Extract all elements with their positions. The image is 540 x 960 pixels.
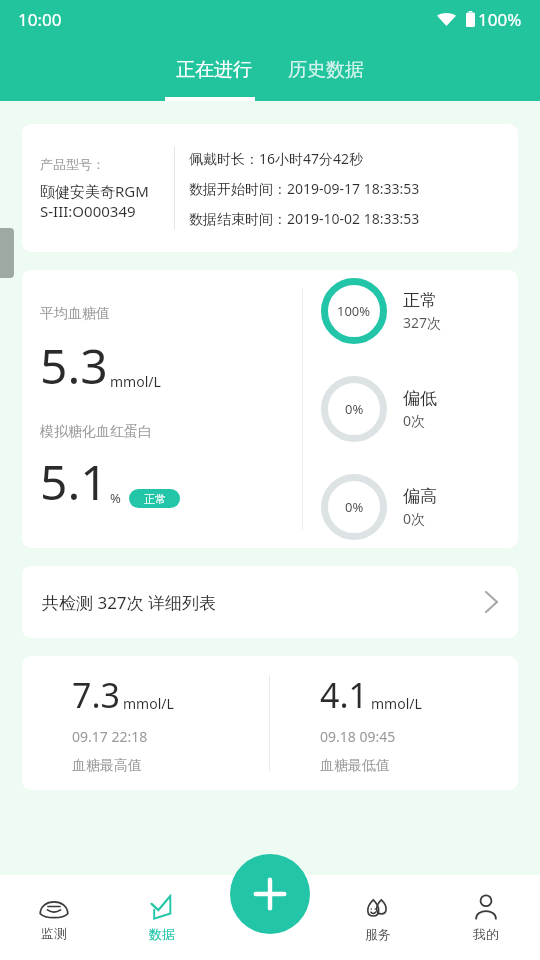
- button[interactable]: 正在进行: [166, 50, 262, 90]
- staticText: 产品型号：: [40, 156, 105, 172]
- staticText: 共检测 327次 详细列表: [42, 591, 217, 614]
- staticText: 颐健安美奇RGM: [40, 181, 149, 201]
- button[interactable]: 共检测 327次 详细列表: [22, 566, 518, 638]
- staticText: mmol/L: [123, 694, 174, 713]
- staticText: 正常: [403, 290, 437, 311]
- staticText: 历史数据: [288, 58, 364, 82]
- staticText: 数据: [149, 926, 175, 942]
- staticText: 09.18 09:45: [320, 727, 396, 746]
- staticText: 4.1: [320, 672, 369, 718]
- staticText: 09.17 22:18: [72, 727, 148, 746]
- button[interactable]: 数据: [108, 875, 216, 960]
- staticText: 数据开始时间：2019-09-17 18:33:53: [189, 179, 420, 198]
- staticText: 我的: [473, 926, 499, 942]
- button[interactable]: 产品型号：: [22, 124, 518, 252]
- staticText: 0%: [345, 498, 364, 516]
- staticText: 数据结束时间：2019-10-02 18:33:53: [189, 209, 420, 228]
- staticText: 5.1: [40, 449, 108, 514]
- staticText: 100%: [337, 302, 371, 320]
- staticText: mmol/L: [110, 372, 161, 391]
- staticText: 服务: [365, 926, 391, 942]
- staticText: 0%: [345, 400, 364, 418]
- staticText: 100%: [478, 8, 522, 31]
- staticText: 正在进行: [176, 58, 252, 82]
- staticText: %: [110, 489, 121, 507]
- staticText: S-III:O000349: [40, 201, 136, 221]
- button[interactable]: 历史数据: [278, 50, 374, 90]
- staticText: 血糖最低值: [320, 757, 390, 775]
- staticText: 佩戴时长：16小时47分42秒: [189, 149, 364, 168]
- staticText: 10:00: [18, 8, 62, 31]
- staticText: 血糖最高值: [72, 757, 142, 775]
- button[interactable]: Add: [230, 854, 310, 934]
- staticText: 7.3: [72, 672, 121, 718]
- staticText: 0次: [403, 411, 426, 430]
- button[interactable]: 服务: [324, 875, 432, 960]
- staticText: 正常: [144, 492, 166, 506]
- staticText: 327次: [403, 313, 442, 332]
- staticText: mmol/L: [371, 694, 422, 713]
- staticText: 偏低: [403, 388, 437, 409]
- staticText: 0次: [403, 509, 426, 528]
- staticText: 平均血糖值: [40, 305, 110, 323]
- staticText: 监测: [41, 925, 67, 941]
- button[interactable]: 我的: [432, 875, 540, 960]
- staticText: 5.3: [40, 333, 108, 398]
- staticText: 模拟糖化血红蛋白: [40, 423, 152, 441]
- staticText: 偏高: [403, 486, 437, 507]
- button[interactable]: 监测: [0, 875, 108, 960]
